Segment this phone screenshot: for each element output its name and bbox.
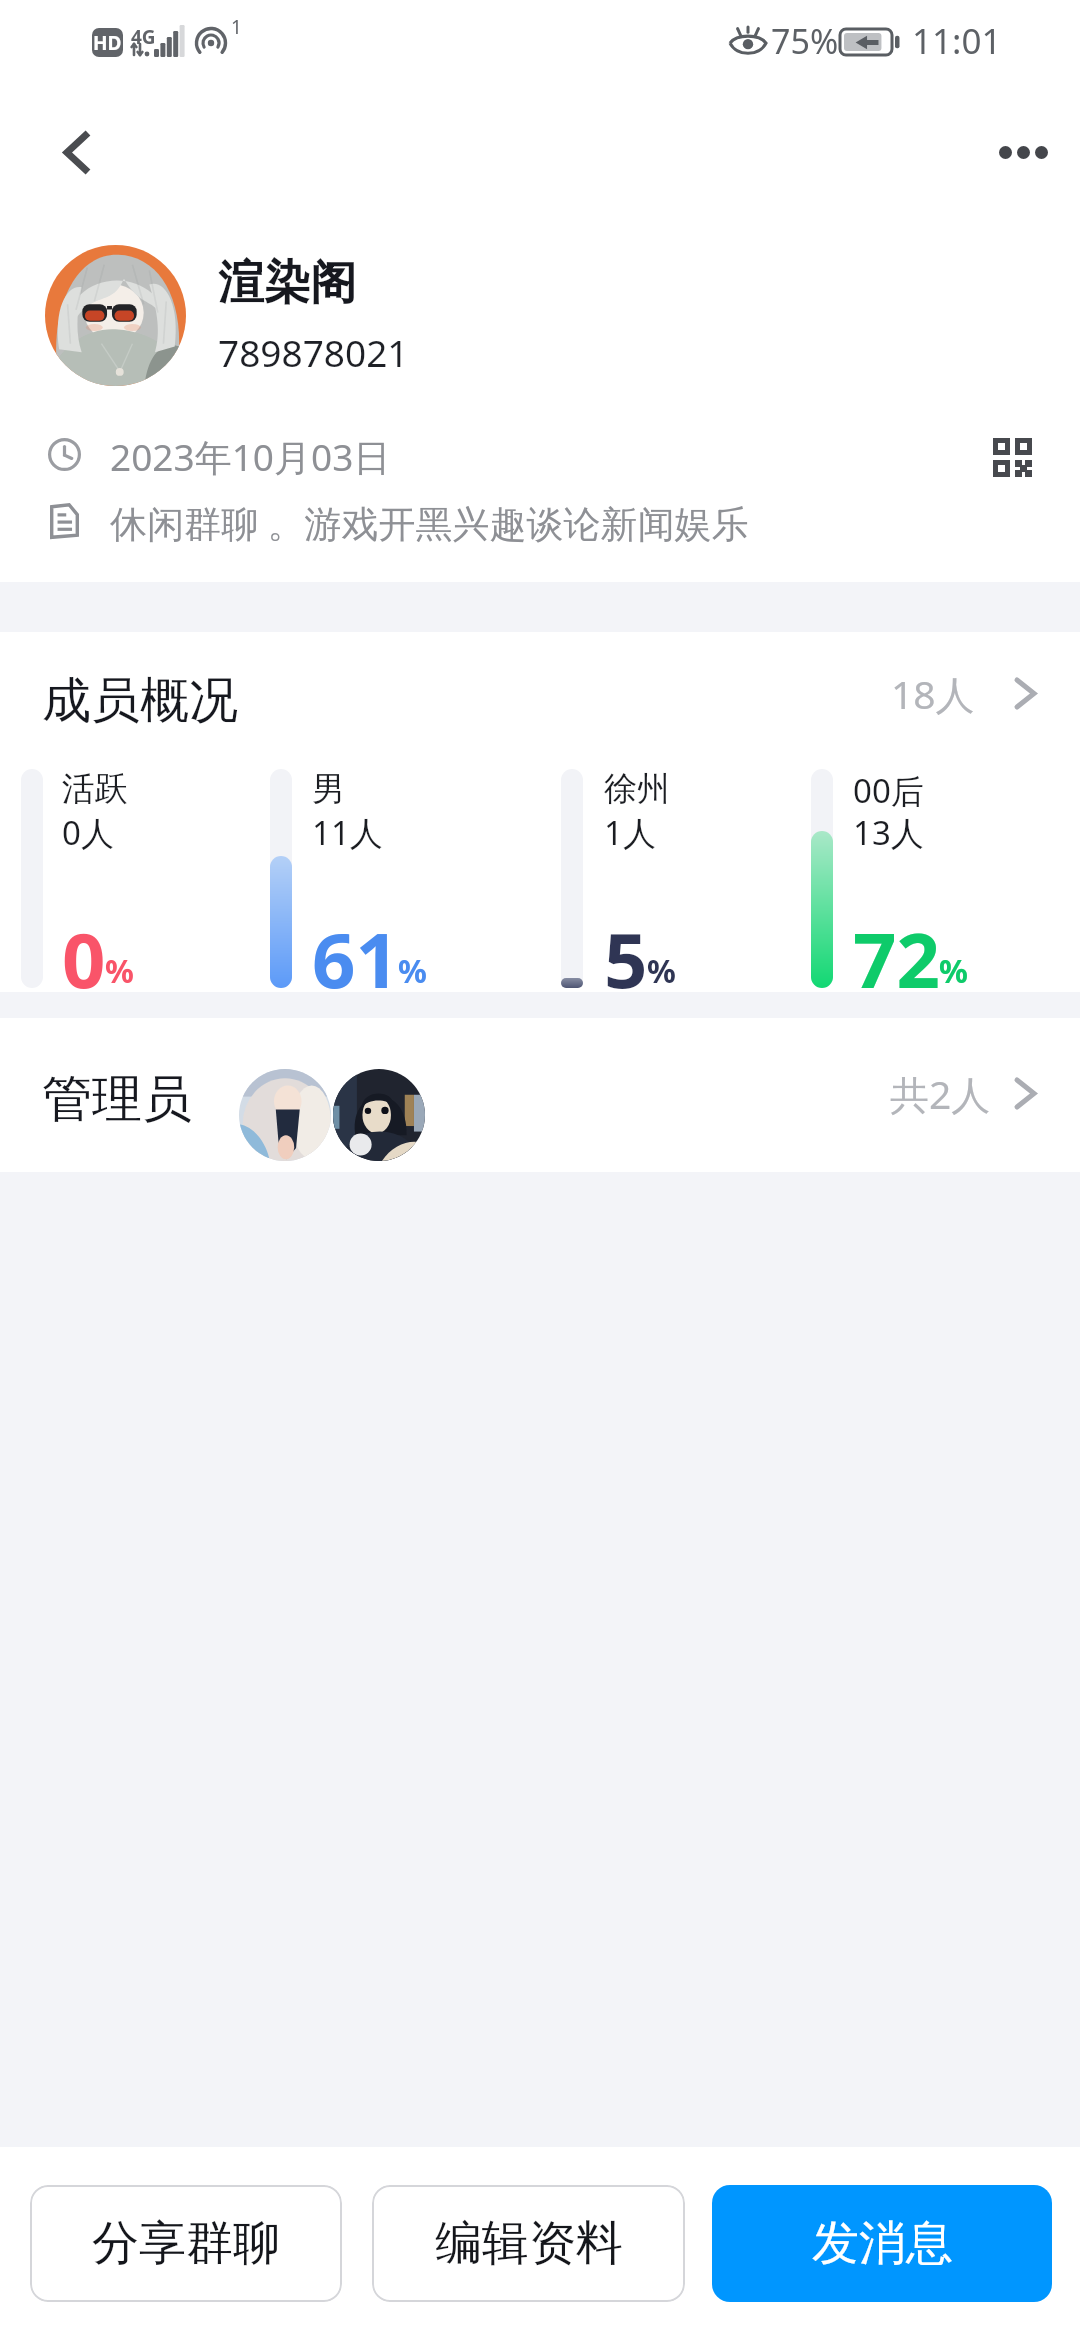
- staticText: 18人: [891, 667, 975, 720]
- button[interactable]: 发消息: [712, 2185, 1052, 2302]
- staticText: 发消息: [812, 2214, 953, 2273]
- button[interactable]: 分享群聊: [30, 2185, 342, 2302]
- button[interactable]: 编辑资料: [372, 2185, 685, 2302]
- staticText: 00后: [853, 768, 924, 813]
- staticText: %: [398, 949, 427, 993]
- staticText: 72: [853, 907, 940, 1011]
- staticText: %: [105, 949, 134, 993]
- staticText: 13人: [853, 810, 924, 855]
- staticText: 75%: [771, 18, 839, 64]
- staticText: 11人: [312, 810, 383, 855]
- staticText: 共2人: [890, 1067, 991, 1120]
- button[interactable]: More options: [976, 105, 1070, 199]
- staticText: 61: [312, 907, 399, 1011]
- staticText: 分享群聊: [92, 2214, 280, 2273]
- staticText: 编辑资料: [435, 2214, 623, 2273]
- staticText: %: [647, 949, 676, 993]
- staticText: HD: [93, 30, 122, 56]
- staticText: 休闲群聊 。游戏开黑兴趣谈论新闻娱乐: [110, 497, 749, 548]
- button[interactable]: 管理员: [0, 1018, 1080, 1172]
- staticText: 渲染阁: [218, 254, 356, 312]
- button[interactable]: 成员概况: [0, 632, 1080, 740]
- staticText: %: [939, 949, 968, 993]
- staticText: 徐州: [604, 768, 670, 810]
- staticText: 2023年10月03日: [110, 431, 391, 482]
- staticText: 0: [62, 907, 106, 1011]
- staticText: 成员概况: [42, 670, 238, 732]
- staticText: 0人: [62, 810, 114, 855]
- staticText: 4G: [131, 24, 156, 50]
- staticText: 男: [312, 768, 345, 810]
- button[interactable]: Group QR code: [962, 407, 1062, 507]
- staticText: 1: [231, 14, 242, 40]
- staticText: 789878021: [218, 327, 409, 377]
- staticText: 5: [604, 907, 648, 1011]
- staticText: 活跃: [62, 768, 128, 810]
- staticText: 1人: [604, 810, 656, 855]
- staticText: 11:01: [912, 17, 1002, 65]
- button[interactable]: Back: [31, 106, 123, 198]
- staticText: 管理员: [42, 1068, 192, 1131]
